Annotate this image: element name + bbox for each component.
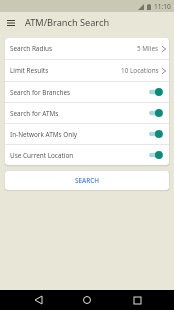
button[interactable]: Use Current Location bbox=[5, 145, 169, 165]
button[interactable]: SEARCH bbox=[5, 171, 169, 190]
staticText: Search Radius bbox=[10, 44, 53, 53]
button[interactable]: Open navigation menu bbox=[0, 12, 22, 33]
staticText: Search for ATMs bbox=[10, 109, 59, 118]
staticText: ATM/Branch Search bbox=[25, 16, 110, 29]
button[interactable]: In-Network ATMs Only bbox=[5, 124, 169, 144]
staticText: In-Network ATMs Only bbox=[10, 130, 78, 139]
staticText: 10 Locations bbox=[121, 66, 159, 75]
staticText: Use Current Location bbox=[10, 151, 74, 160]
staticText: 5 Miles bbox=[137, 44, 159, 53]
button[interactable]: Recent apps bbox=[125, 290, 149, 310]
staticText: Search for Branches bbox=[10, 88, 71, 97]
button[interactable]: Home bbox=[75, 290, 99, 310]
button[interactable]: Back bbox=[26, 290, 50, 310]
button[interactable]: Limit Results bbox=[5, 60, 169, 81]
button[interactable]: Search Radius bbox=[5, 38, 169, 59]
staticText: 11:10 bbox=[154, 2, 171, 11]
staticText: Limit Results bbox=[10, 66, 49, 75]
button[interactable]: Search for ATMs bbox=[5, 103, 169, 123]
staticText: SEARCH bbox=[75, 176, 100, 185]
button[interactable]: Search for Branches bbox=[5, 82, 169, 102]
